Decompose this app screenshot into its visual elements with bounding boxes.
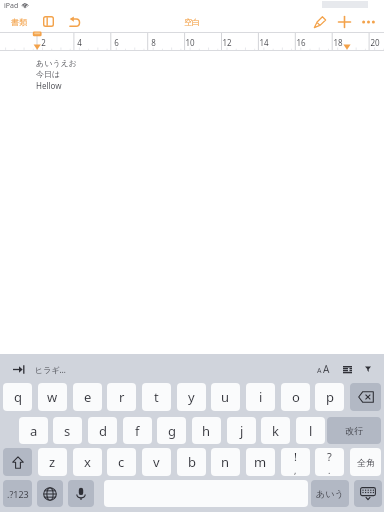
staticText: a	[30, 422, 38, 440]
staticText: ,	[294, 464, 297, 476]
button[interactable]: q	[3, 383, 32, 411]
staticText: l	[309, 422, 313, 440]
button[interactable]: f	[123, 417, 152, 444]
button[interactable]: ?	[315, 448, 344, 476]
staticText: y	[188, 388, 195, 406]
staticText: 14	[259, 37, 269, 48]
staticText: o	[292, 388, 300, 406]
staticText: A	[317, 366, 322, 376]
button[interactable]: Document setup	[42, 16, 54, 27]
staticText: r	[119, 388, 125, 406]
button[interactable]: 改行	[327, 417, 381, 444]
staticText: p	[326, 388, 334, 406]
button[interactable]: ヒラギ…	[35, 361, 66, 377]
staticText: 8	[151, 37, 156, 48]
staticText: i	[259, 388, 263, 406]
button[interactable]: Hide keyboard	[360, 360, 376, 378]
button[interactable]: y	[177, 383, 206, 411]
staticText: 12	[222, 37, 232, 48]
staticText: m	[254, 453, 267, 471]
staticText: ?	[327, 449, 332, 464]
staticText: n	[221, 453, 230, 471]
staticText: 10	[185, 37, 195, 48]
staticText: !	[294, 449, 297, 464]
staticText: .	[328, 464, 331, 476]
button[interactable]: Dismiss keyboard	[354, 480, 382, 507]
button[interactable]: v	[142, 448, 171, 476]
button[interactable]: t	[142, 383, 171, 411]
staticText: h	[202, 422, 211, 440]
staticText: z	[49, 453, 56, 471]
staticText: t	[154, 388, 159, 406]
button[interactable]: z	[38, 448, 67, 476]
button[interactable]: b	[177, 448, 206, 476]
button[interactable]: Text size	[313, 360, 333, 378]
button[interactable]: e	[73, 383, 102, 411]
button[interactable]: d	[88, 417, 117, 444]
staticText: 18	[333, 37, 343, 48]
button[interactable]: 全角	[350, 448, 381, 476]
button[interactable]: 書類	[7, 14, 31, 30]
button[interactable]: Format	[311, 14, 328, 30]
button[interactable]: o	[281, 383, 310, 411]
button[interactable]: l	[296, 417, 325, 444]
staticText: 空白	[184, 17, 200, 27]
staticText: 4	[77, 37, 82, 48]
button[interactable]: j	[227, 417, 256, 444]
button[interactable]: i	[246, 383, 275, 411]
button[interactable]: c	[107, 448, 136, 476]
button[interactable]: 空白	[176, 14, 208, 30]
button[interactable]: Delete	[350, 383, 381, 411]
button[interactable]: r	[107, 383, 136, 411]
button[interactable]: !	[281, 448, 310, 476]
staticText: k	[272, 422, 279, 440]
staticText: iPad	[4, 1, 19, 11]
staticText: 20	[370, 37, 380, 48]
button[interactable]: g	[157, 417, 186, 444]
button[interactable]: x	[73, 448, 102, 476]
button[interactable]: .?123	[3, 480, 32, 507]
staticText: j	[240, 422, 244, 440]
staticText: e	[84, 388, 92, 406]
staticText: w	[47, 388, 58, 406]
staticText: x	[84, 453, 91, 471]
staticText: .?123	[7, 488, 29, 500]
button[interactable]: Undo	[67, 16, 81, 28]
button[interactable]: Paragraph style	[339, 360, 355, 378]
button[interactable]: k	[261, 417, 290, 444]
button[interactable]: More	[360, 14, 377, 30]
button[interactable]: a	[19, 417, 48, 444]
staticText: f	[135, 422, 140, 440]
button[interactable]: m	[246, 448, 275, 476]
staticText: Hellow	[36, 80, 62, 91]
staticText: 2	[41, 37, 46, 48]
staticText: 全角	[357, 457, 375, 468]
button[interactable]: Shift	[3, 448, 32, 476]
button[interactable]: p	[315, 383, 344, 411]
staticText: あいう	[316, 488, 344, 499]
button[interactable]: u	[211, 383, 240, 411]
staticText: ヒラギ…	[35, 364, 66, 375]
button[interactable]: Insert	[336, 14, 353, 30]
button[interactable]: n	[211, 448, 240, 476]
staticText: 16	[296, 37, 306, 48]
staticText: c	[118, 453, 125, 471]
staticText: 6	[114, 37, 119, 48]
staticText: 今日は	[36, 69, 61, 79]
button[interactable]: w	[38, 383, 67, 411]
button[interactable]: Dictate	[68, 480, 94, 507]
staticText: g	[168, 422, 176, 440]
staticText: s	[64, 422, 71, 440]
staticText: 書類	[11, 17, 27, 27]
button[interactable]: h	[192, 417, 221, 444]
button[interactable]: Next keyboard	[37, 480, 63, 507]
staticText: q	[14, 388, 22, 406]
button[interactable]: Tab	[11, 361, 27, 377]
staticText: v	[153, 453, 160, 471]
staticText: b	[188, 453, 196, 471]
button[interactable]: s	[53, 417, 82, 444]
staticText: A	[323, 362, 330, 376]
staticText: 改行	[345, 425, 363, 436]
button[interactable]: あいう	[311, 480, 349, 507]
